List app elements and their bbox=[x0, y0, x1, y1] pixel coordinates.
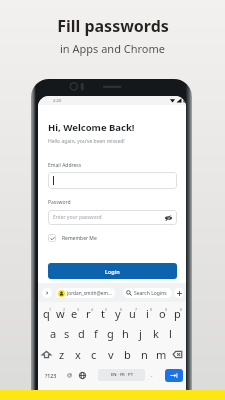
button[interactable]: o bbox=[155, 304, 170, 323]
staticText: b bbox=[124, 347, 131, 362]
button[interactable]: Enter bbox=[165, 369, 183, 382]
button[interactable]: More options bbox=[174, 288, 184, 298]
button[interactable]: r bbox=[81, 304, 95, 323]
staticText: k bbox=[153, 326, 159, 341]
button[interactable]: Backspace bbox=[170, 344, 185, 365]
button[interactable]: Enter your password bbox=[48, 210, 177, 225]
staticText: 2:25 bbox=[53, 98, 62, 104]
staticText: jordan_smith@em... bbox=[67, 290, 112, 297]
button[interactable]: y bbox=[110, 304, 125, 323]
button[interactable]: z bbox=[54, 344, 70, 365]
button[interactable] bbox=[48, 172, 177, 189]
staticText: t bbox=[101, 306, 105, 321]
button[interactable]: d bbox=[74, 323, 88, 344]
staticText: 1 bbox=[49, 307, 52, 312]
staticText: h bbox=[122, 326, 129, 341]
button[interactable]: m bbox=[153, 344, 170, 365]
button[interactable]: Expand suggestions bbox=[42, 288, 52, 298]
staticText: m bbox=[156, 347, 167, 362]
staticText: Login bbox=[105, 268, 120, 275]
button[interactable]: l bbox=[163, 323, 178, 344]
staticText: g bbox=[107, 326, 114, 341]
button[interactable]: t bbox=[95, 304, 110, 323]
staticText: u bbox=[129, 306, 136, 321]
button[interactable]: n bbox=[136, 344, 153, 365]
staticText: 7 bbox=[135, 307, 138, 312]
staticText: 4 bbox=[91, 307, 94, 312]
button[interactable]: Search Logins bbox=[123, 288, 172, 298]
staticText: i bbox=[146, 306, 149, 321]
staticText: c bbox=[91, 347, 97, 362]
staticText: v bbox=[108, 347, 114, 362]
staticText: l bbox=[169, 326, 172, 341]
staticText: Hello again, you've been missed! bbox=[48, 138, 125, 145]
button[interactable]: . bbox=[145, 365, 158, 385]
staticText: Remember Me bbox=[62, 235, 97, 242]
staticText: Enter your password bbox=[53, 214, 102, 221]
button[interactable]: Shift bbox=[39, 344, 54, 365]
button[interactable]: u bbox=[125, 304, 140, 323]
staticText: Email Address bbox=[48, 162, 82, 169]
staticText: p bbox=[174, 306, 181, 321]
button[interactable]: v bbox=[102, 344, 119, 365]
staticText: 9 bbox=[165, 307, 168, 312]
button[interactable]: f bbox=[88, 323, 103, 344]
button[interactable]: k bbox=[148, 323, 163, 344]
staticText: n bbox=[141, 347, 148, 362]
staticText: Password bbox=[48, 199, 71, 206]
button[interactable]: e bbox=[67, 304, 81, 323]
staticText: e bbox=[71, 306, 78, 321]
button[interactable]: i bbox=[140, 304, 155, 323]
staticText: in Apps and Chrome bbox=[60, 41, 165, 56]
button[interactable]: Remember Me bbox=[48, 234, 97, 242]
button[interactable]: Change language bbox=[76, 365, 89, 385]
staticText: a bbox=[50, 326, 57, 341]
button[interactable]: w bbox=[53, 304, 67, 323]
staticText: 2 bbox=[63, 307, 66, 312]
staticText: 0 bbox=[180, 307, 183, 312]
button[interactable]: a bbox=[46, 323, 60, 344]
button[interactable]: s bbox=[60, 323, 74, 344]
button[interactable]: c bbox=[86, 344, 102, 365]
staticText: f bbox=[94, 326, 98, 341]
staticText: 3 bbox=[77, 307, 80, 312]
button[interactable]: Emoji bbox=[63, 365, 76, 385]
staticText: r bbox=[86, 306, 91, 321]
staticText: d bbox=[78, 326, 85, 341]
staticText: w bbox=[56, 306, 65, 321]
button[interactable]: p bbox=[170, 304, 185, 323]
staticText: Fill passwords bbox=[57, 15, 169, 37]
staticText: 6 bbox=[120, 307, 123, 312]
button[interactable]: Login bbox=[48, 263, 177, 279]
staticText: y bbox=[115, 306, 121, 321]
staticText: @ bbox=[67, 371, 73, 379]
staticText: EN · FR · PT bbox=[111, 372, 133, 378]
staticText: 5 bbox=[105, 307, 108, 312]
staticText: q bbox=[43, 306, 50, 321]
button[interactable]: jordan_smith@em... bbox=[56, 288, 115, 298]
button[interactable]: x bbox=[70, 344, 86, 365]
staticText: Hi, Welcome Back! bbox=[48, 121, 135, 134]
button[interactable]: h bbox=[118, 323, 133, 344]
staticText: Search Logins bbox=[134, 290, 167, 297]
staticText: s bbox=[64, 326, 70, 341]
button[interactable]: ?123 bbox=[39, 365, 63, 385]
staticText: ?123 bbox=[45, 372, 57, 379]
staticText: o bbox=[159, 306, 166, 321]
button[interactable]: g bbox=[103, 323, 118, 344]
staticText: . bbox=[151, 371, 153, 379]
staticText: x bbox=[75, 347, 81, 362]
staticText: z bbox=[59, 347, 65, 362]
button[interactable]: b bbox=[119, 344, 136, 365]
button[interactable]: q bbox=[39, 304, 53, 323]
button[interactable]: j bbox=[133, 323, 148, 344]
staticText: j bbox=[139, 326, 142, 341]
staticText: 8 bbox=[150, 307, 153, 312]
button[interactable]: EN · FR · PT bbox=[98, 369, 145, 381]
